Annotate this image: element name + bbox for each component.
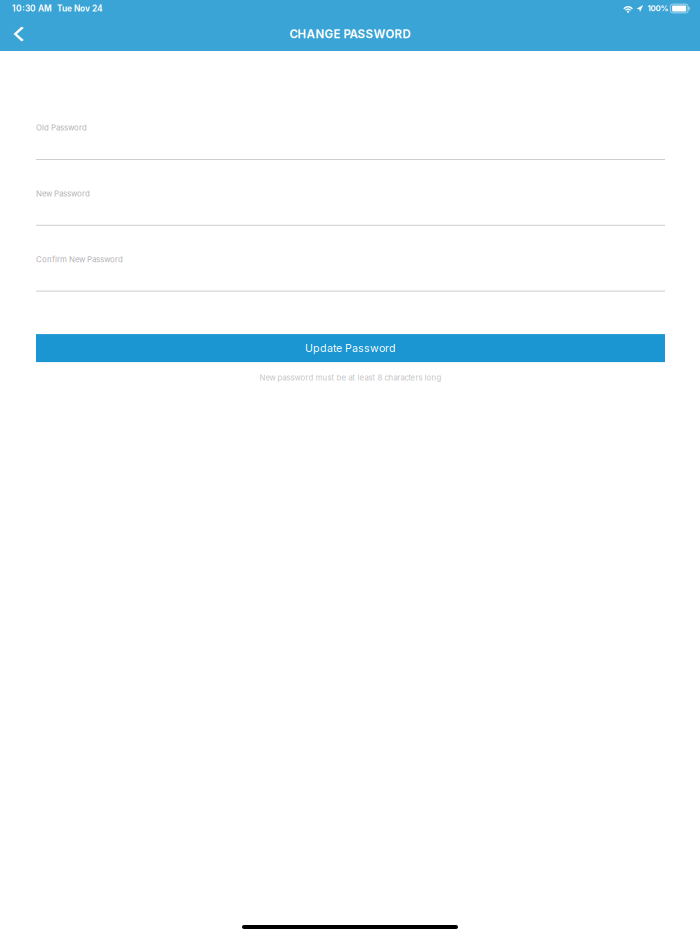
- staticText: CHANGE PASSWORD: [289, 27, 410, 41]
- staticText: New password must be at least 8 characte…: [259, 373, 441, 382]
- button[interactable]: Confirm New Password: [36, 255, 665, 292]
- staticText: Old Password: [36, 123, 87, 132]
- staticText: Update Password: [305, 342, 396, 354]
- button[interactable]: Update Password: [36, 334, 665, 362]
- staticText: 10:30 AM: [12, 3, 52, 13]
- staticText: 100%: [647, 4, 668, 13]
- staticText: Confirm New Password: [36, 255, 123, 264]
- staticText: Tue Nov 24: [57, 3, 103, 13]
- button[interactable]: New Password: [36, 189, 665, 226]
- staticText: New Password: [36, 189, 90, 198]
- button[interactable]: Old Password: [36, 123, 665, 160]
- button[interactable]: Back: [4, 18, 34, 50]
